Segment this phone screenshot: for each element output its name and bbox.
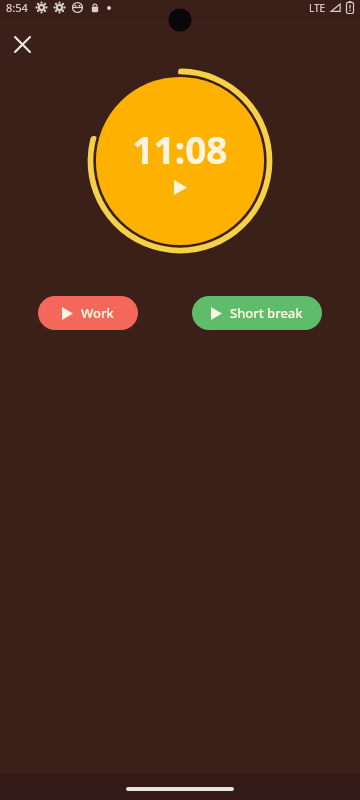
staticText: Work <box>81 304 114 322</box>
staticText: Short break <box>230 304 303 322</box>
button[interactable]: 11:08 <box>87 68 273 254</box>
button[interactable]: Close <box>6 28 38 60</box>
button[interactable]: Work <box>38 296 138 330</box>
button[interactable]: Short break <box>192 296 322 330</box>
staticText: LTE <box>309 1 326 15</box>
staticText: 11:08 <box>132 124 228 174</box>
staticText: 8:54 <box>6 0 28 15</box>
